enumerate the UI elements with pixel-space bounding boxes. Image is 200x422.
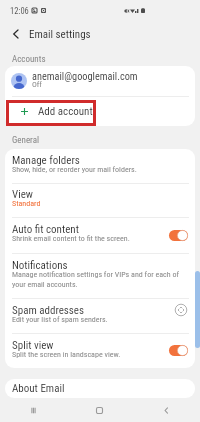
staticText: Auto fit content xyxy=(12,223,79,236)
staticText: Shrink email content to fit the screen. xyxy=(12,234,130,243)
staticText: Split the screen in landscape view. xyxy=(12,350,121,359)
staticText: Notifications xyxy=(12,259,68,272)
button[interactable]: Manage folders xyxy=(5,149,195,183)
staticText: Add account xyxy=(38,105,93,118)
staticText: Manage notification settings for VIPs an… xyxy=(12,270,179,289)
staticText: 12:06 xyxy=(10,6,29,16)
staticText: Manage folders xyxy=(12,154,80,167)
button[interactable]: Spam address options xyxy=(174,303,188,317)
staticText: anemail@googlemail.com xyxy=(32,70,138,82)
button[interactable]: Auto fit content xyxy=(5,217,195,253)
staticText: Accounts xyxy=(12,54,46,65)
button[interactable]: About Email xyxy=(5,379,195,398)
staticText: Off xyxy=(32,80,42,89)
button[interactable]: Back xyxy=(133,399,200,422)
button[interactable]: Navigate up xyxy=(8,26,24,42)
staticText: View xyxy=(12,188,33,201)
button[interactable]: View xyxy=(5,183,195,217)
staticText: General xyxy=(12,135,40,146)
button[interactable]: Spam addresses xyxy=(5,298,195,333)
button[interactable]: Recent apps xyxy=(0,399,66,422)
staticText: Show, hide, or reorder your mail folders… xyxy=(12,165,137,174)
staticText: Spam addresses xyxy=(12,304,84,317)
staticText: Edit your list of spam senders. xyxy=(12,315,108,324)
button[interactable]: Add account xyxy=(5,96,195,126)
staticText: Standard xyxy=(12,199,41,208)
staticText: About Email xyxy=(12,382,65,395)
button[interactable]: anemail@googlemail.com xyxy=(5,66,195,96)
button[interactable]: Toggle Split view xyxy=(169,345,188,356)
staticText: Split view xyxy=(12,339,54,352)
button[interactable]: Toggle Auto fit content xyxy=(169,230,188,241)
button[interactable]: Home xyxy=(66,399,133,422)
button[interactable]: Split view xyxy=(5,333,195,368)
button[interactable]: Notifications xyxy=(5,253,195,299)
staticText: Email settings xyxy=(29,28,91,41)
